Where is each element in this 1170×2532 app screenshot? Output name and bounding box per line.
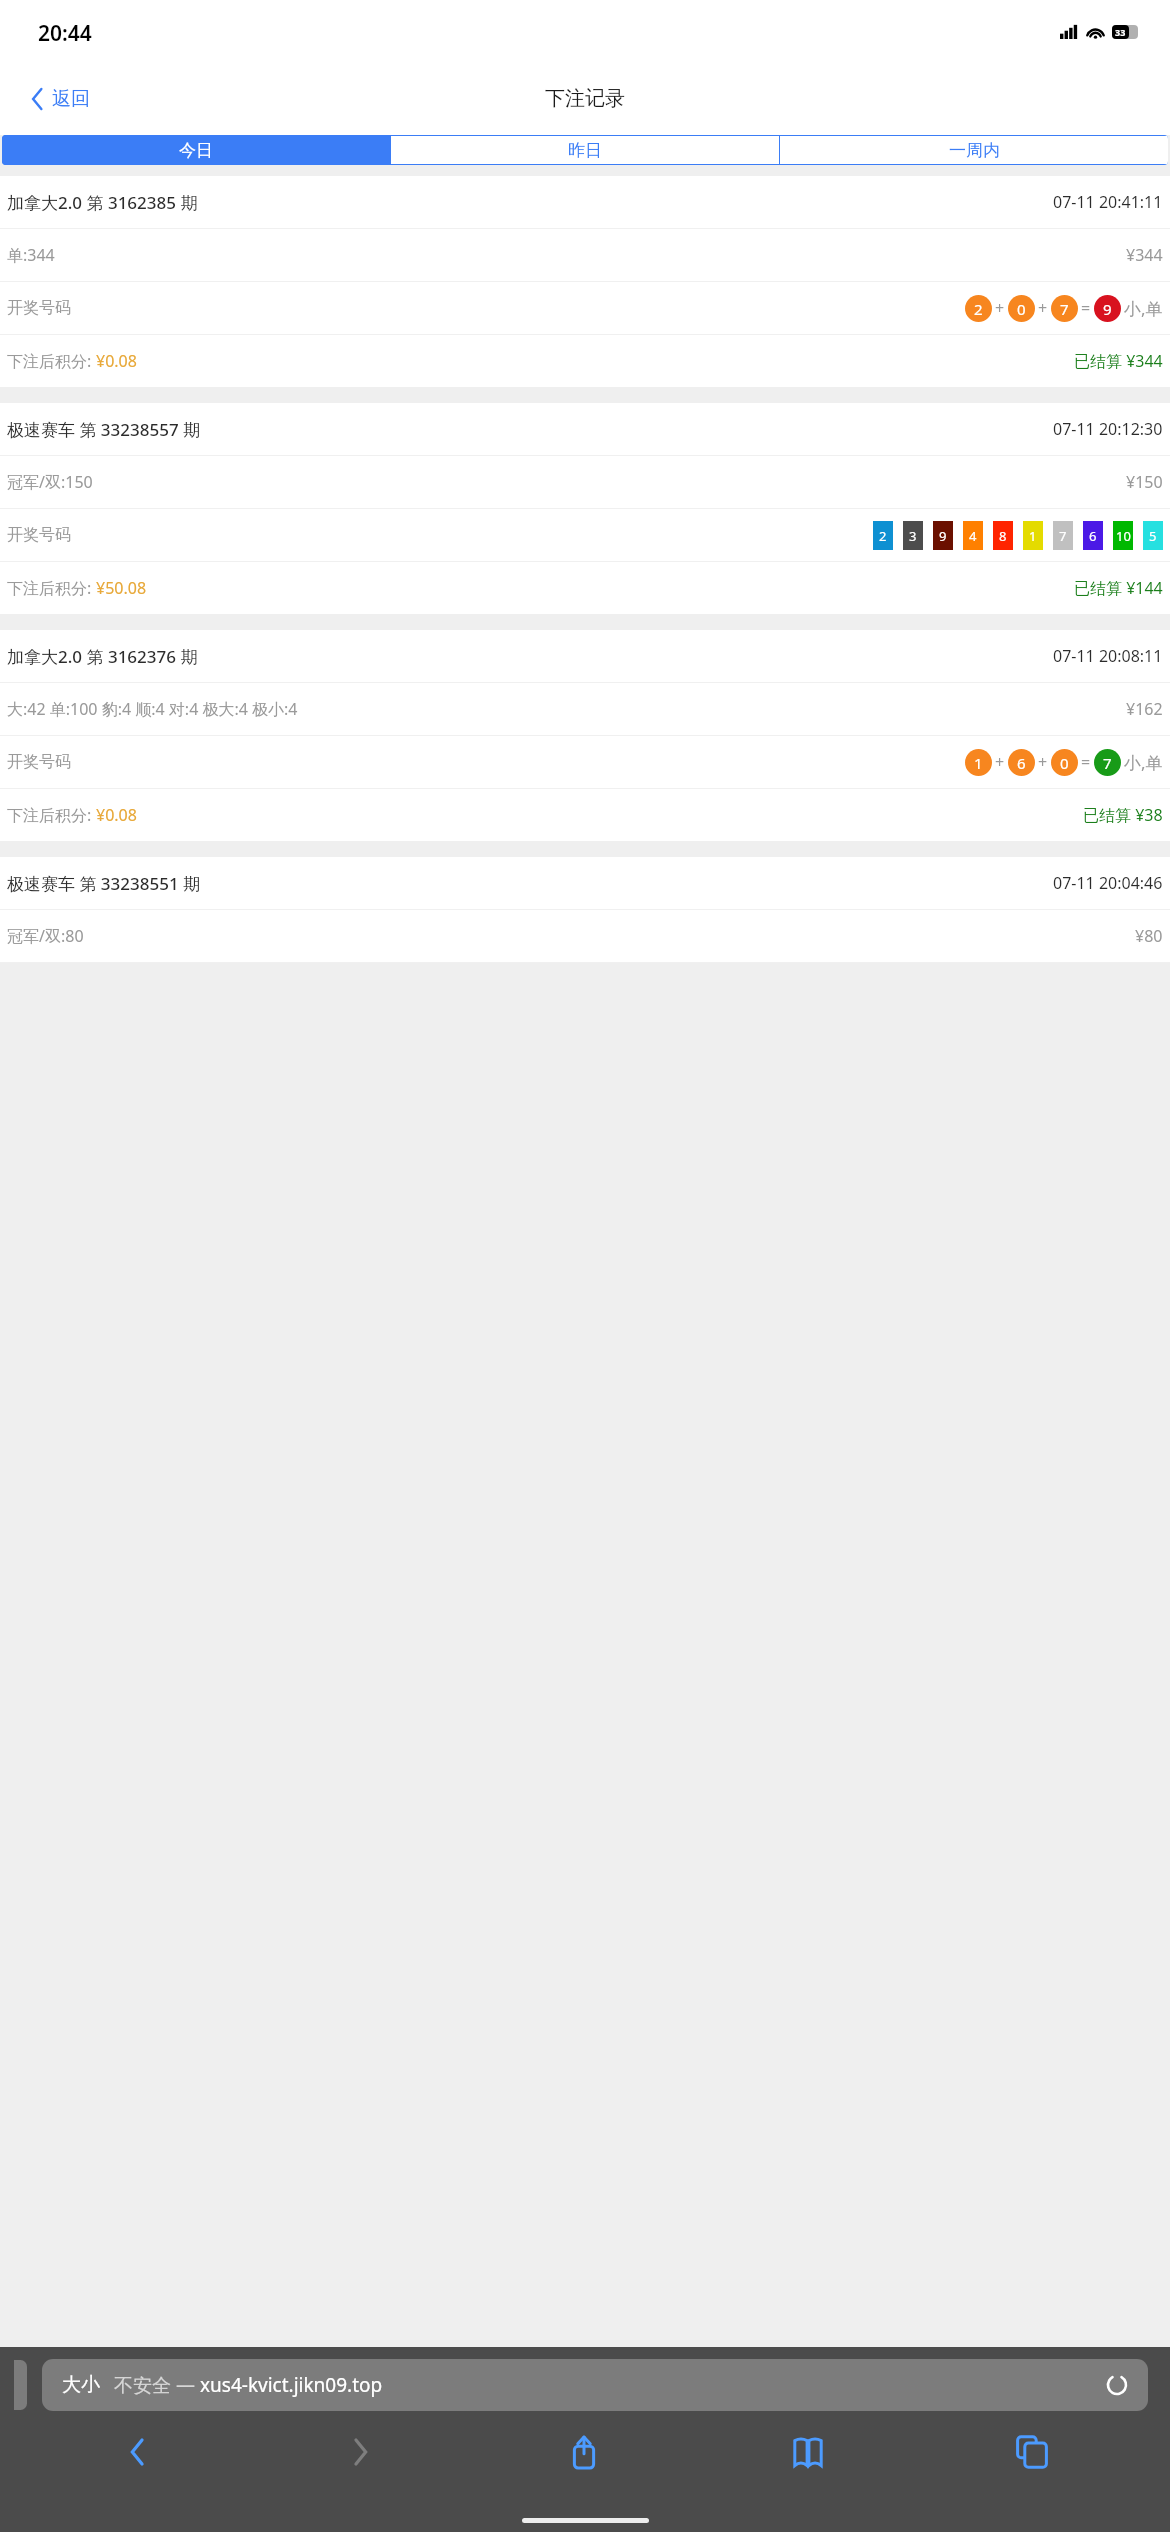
staticText: 07-11 20:08:11 [1053, 645, 1163, 667]
staticText: ¥0.08 [96, 804, 137, 826]
staticText: 7 [1059, 527, 1067, 545]
staticText: 一周内 [949, 140, 1000, 161]
staticText: 极速赛车 第 33238551 期 [7, 872, 201, 895]
staticText: 0 [1017, 299, 1026, 319]
staticText: 07-11 20:41:11 [1053, 191, 1163, 213]
staticText: + [1038, 751, 1048, 773]
button[interactable]: 昨日 [391, 136, 779, 164]
staticText: 已结算 ¥144 [1074, 577, 1163, 599]
staticText: 小,单 [1124, 751, 1163, 774]
staticText: 1 [1029, 527, 1037, 545]
staticText: 6 [1089, 527, 1097, 545]
staticText: ¥150 [1126, 471, 1163, 493]
staticText: 下注后积分: [7, 577, 96, 599]
staticText: + [1038, 297, 1048, 319]
staticText: 3 [909, 527, 917, 545]
button[interactable]: Tabs [920, 2425, 1144, 2479]
button[interactable]: 加拿大2.0 第 3162385 期 [0, 176, 1170, 387]
button[interactable]: 极速赛车 第 33238557 期 [0, 403, 1170, 614]
button[interactable]: 返回 [26, 81, 96, 117]
staticText: 0 [1060, 753, 1069, 773]
staticText: 07-11 20:12:30 [1053, 418, 1163, 440]
staticText: 07-11 20:04:46 [1053, 872, 1163, 894]
staticText: 10 [1116, 527, 1131, 545]
button[interactable]: Back [26, 2425, 249, 2479]
button[interactable]: Forward [249, 2425, 472, 2479]
staticText: 9 [939, 527, 947, 545]
staticText: 大:42 单:100 豹:4 顺:4 对:4 极大:4 极小:4 [7, 698, 298, 720]
staticText: 加拿大2.0 第 3162385 期 [7, 191, 198, 214]
staticText: + [995, 751, 1005, 773]
staticText: 单:344 [7, 244, 55, 266]
staticText: 小,单 [1124, 297, 1163, 320]
staticText: 开奖号码 [7, 752, 71, 772]
staticText: 冠军/双:80 [7, 925, 84, 947]
staticText: 冠军/双:150 [7, 471, 93, 493]
staticText: 4 [969, 527, 977, 545]
staticText: 33 [1115, 26, 1126, 38]
staticText: 加拿大2.0 第 3162376 期 [7, 645, 198, 668]
button[interactable]: 一周内 [780, 136, 1168, 164]
staticText: 返回 [52, 87, 90, 111]
staticText: = [1081, 751, 1091, 773]
staticText: 极速赛车 第 33238557 期 [7, 418, 201, 441]
staticText: 6 [1017, 753, 1026, 773]
staticText: 开奖号码 [7, 298, 71, 318]
staticText: 今日 [179, 140, 213, 161]
staticText: 2 [974, 299, 983, 319]
staticText: = [1081, 297, 1091, 319]
staticText: 5 [1149, 527, 1157, 545]
other: Reload [1106, 2374, 1128, 2396]
button[interactable]: Bookmarks [696, 2425, 920, 2479]
staticText: ¥0.08 [96, 350, 137, 372]
staticText: ¥80 [1135, 925, 1163, 947]
staticText: 9 [1103, 299, 1112, 319]
staticText: 已结算 ¥344 [1074, 350, 1163, 372]
staticText: 已结算 ¥38 [1083, 804, 1163, 826]
staticText: 下注记录 [545, 86, 625, 111]
button[interactable]: 今日 [2, 135, 390, 165]
staticText: 开奖号码 [7, 525, 71, 545]
button[interactable]: 加拿大2.0 第 3162376 期 [0, 630, 1170, 841]
staticText: 下注后积分: [7, 350, 96, 372]
staticText: xus4-kvict.jikn09.top [200, 2372, 383, 2398]
staticText: 昨日 [568, 140, 602, 161]
staticText: ¥162 [1126, 698, 1163, 720]
staticText: 2 [879, 527, 887, 545]
staticText: 不安全 — [114, 2372, 200, 2398]
staticText: ¥344 [1126, 244, 1163, 266]
staticText: 7 [1060, 299, 1069, 319]
staticText: 下注后积分: [7, 804, 96, 826]
button[interactable]: 极速赛车 第 33238551 期 [0, 857, 1170, 963]
staticText: 1 [974, 753, 983, 773]
staticText: 8 [999, 527, 1007, 545]
staticText: 7 [1103, 753, 1112, 773]
staticText: 大小 [62, 2373, 100, 2397]
button[interactable]: Share [472, 2425, 696, 2479]
staticText: 20:44 [38, 19, 92, 48]
button[interactable]: 大小 [42, 2359, 1148, 2411]
staticText: ¥50.08 [96, 577, 147, 599]
staticText: + [995, 297, 1005, 319]
